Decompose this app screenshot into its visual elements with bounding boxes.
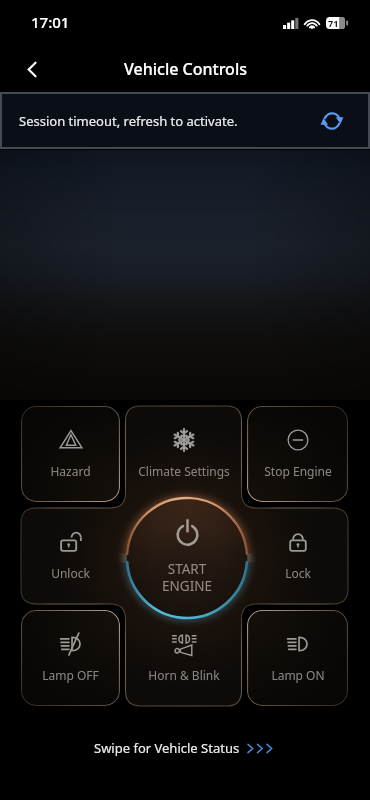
staticText: Lamp ON [271,667,325,683]
staticText: 71 [328,17,339,29]
staticText: Unlock [51,565,90,581]
staticText: Horn & Blink [148,667,220,683]
button[interactable]: Lamp ON [247,610,348,706]
button[interactable]: Climate Settings [126,406,242,502]
button[interactable]: Session timeout, refresh to activate. [0,92,370,149]
staticText: Vehicle Controls [124,58,247,80]
staticText: Climate Settings [138,463,230,479]
staticText: Swipe for Vehicle Status [94,739,240,757]
staticText: Session timeout, refresh to activate. [19,112,238,130]
staticText: Stop Engine [264,463,332,479]
staticText: Hazard [50,463,91,479]
button[interactable]: Lock [247,508,348,604]
staticText: Lamp OFF [42,667,99,683]
button[interactable]: Lamp OFF [21,610,120,706]
button[interactable]: Unlock [21,508,120,604]
button[interactable]: START ENGINE [111,482,263,634]
button[interactable]: Hazard [21,406,120,502]
button[interactable]: Horn & Blink [126,610,242,706]
staticText: Lock [285,565,311,581]
button[interactable]: Swipe for Vehicle Status [94,739,276,757]
button[interactable]: Refresh [319,108,345,134]
button[interactable]: Back [14,51,50,87]
button[interactable]: Stop Engine [247,406,348,502]
staticText: 17:01 [31,12,70,32]
staticText: START ENGINE [162,560,212,595]
